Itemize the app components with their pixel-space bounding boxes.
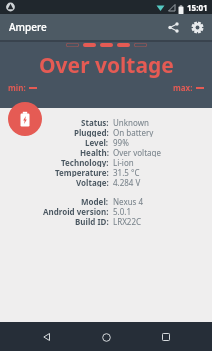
staticText: 15:01	[187, 2, 208, 13]
staticText: Nexus 4	[113, 196, 144, 206]
staticText: Build ID:	[75, 216, 109, 226]
staticText: Li-ion	[113, 157, 134, 167]
staticText: Over voltage	[39, 51, 174, 80]
staticText: Unknown	[113, 117, 149, 127]
staticText: Health:	[80, 147, 109, 157]
staticText: LRX22C	[113, 216, 142, 226]
staticText: Status:	[81, 117, 109, 127]
button[interactable]	[188, 18, 206, 36]
staticText: Voltage:	[76, 177, 109, 187]
staticText: Android version:	[43, 206, 109, 216]
button[interactable]	[153, 324, 179, 350]
button[interactable]	[93, 324, 119, 350]
button[interactable]	[164, 18, 182, 36]
staticText: Level:	[85, 137, 109, 147]
staticText: Model:	[81, 196, 109, 206]
staticText: Ampere	[9, 20, 47, 34]
staticText: 4.284 V	[113, 177, 141, 187]
staticText: Plugged:	[74, 127, 109, 137]
staticText: min:	[8, 82, 26, 93]
staticText: Temperature:	[55, 167, 109, 177]
staticText: max:	[173, 82, 193, 93]
staticText: On battery	[113, 127, 154, 137]
staticText: Over voltage	[113, 147, 161, 157]
staticText: 5.0.1	[113, 206, 132, 216]
button[interactable]	[8, 102, 42, 136]
button[interactable]	[34, 324, 60, 350]
staticText: Technology:	[61, 157, 109, 167]
staticText: 31.5 °C	[113, 167, 140, 177]
staticText: 99%	[113, 137, 129, 147]
